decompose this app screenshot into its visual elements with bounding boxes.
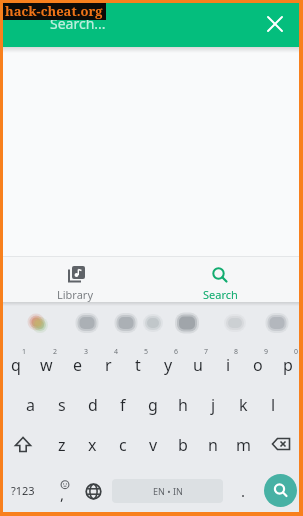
staticText: o <box>253 354 263 376</box>
staticText: b <box>178 434 188 456</box>
staticText: x <box>88 434 97 456</box>
button[interactable] <box>264 474 297 507</box>
staticText: h <box>178 394 188 416</box>
button[interactable]: k <box>228 385 258 425</box>
staticText: 3 <box>84 347 89 357</box>
staticText: 2 <box>53 347 58 357</box>
button[interactable]: l <box>258 385 288 425</box>
button[interactable]: h <box>168 385 198 425</box>
staticText: q <box>11 354 21 376</box>
staticText: f <box>120 394 126 416</box>
staticText: i <box>226 354 231 376</box>
staticText: 8 <box>234 347 239 357</box>
staticText: p <box>283 354 293 376</box>
button[interactable]: 4 <box>93 345 123 385</box>
staticText: Search <box>203 287 238 302</box>
staticText: 4 <box>114 347 119 357</box>
button[interactable] <box>258 465 303 516</box>
staticText: g <box>148 394 158 416</box>
button[interactable]: x <box>77 425 108 465</box>
button[interactable]: Search <box>144 257 296 302</box>
staticText: e <box>73 354 83 376</box>
button[interactable]: z <box>46 425 77 465</box>
staticText: 0 <box>294 347 299 357</box>
button[interactable]: f <box>108 385 138 425</box>
button[interactable]: a <box>15 385 46 425</box>
staticText: , <box>60 484 65 504</box>
button[interactable]: 6 <box>153 345 183 385</box>
staticText: 6 <box>174 347 179 357</box>
button[interactable]: EN • IN <box>107 465 228 516</box>
staticText: w <box>40 354 53 376</box>
staticText: . <box>241 481 246 501</box>
button[interactable]: 3 <box>62 345 93 385</box>
button[interactable]: b <box>168 425 198 465</box>
button[interactable] <box>77 465 107 516</box>
staticText: t <box>135 354 141 376</box>
staticText: c <box>119 434 127 456</box>
button[interactable]: 0 <box>273 345 303 385</box>
staticText: k <box>239 394 248 416</box>
staticText: r <box>105 354 112 376</box>
staticText: EN • IN <box>153 485 183 497</box>
button[interactable]: 8 <box>213 345 243 385</box>
button[interactable]: j <box>198 385 228 425</box>
staticText: 1 <box>22 347 27 357</box>
button[interactable]: 9 <box>243 345 273 385</box>
staticText: d <box>88 394 98 416</box>
button[interactable]: 2 <box>31 345 62 385</box>
button[interactable]: 7 <box>183 345 213 385</box>
staticText: y <box>164 354 173 376</box>
button[interactable]: v <box>138 425 168 465</box>
button[interactable]: . <box>228 465 258 516</box>
button[interactable]: d <box>77 385 108 425</box>
button[interactable] <box>259 8 291 40</box>
staticText: 7 <box>204 347 209 357</box>
staticText: 9 <box>264 347 269 357</box>
button[interactable] <box>258 425 303 465</box>
button[interactable]: 5 <box>123 345 153 385</box>
button[interactable]: g <box>138 385 168 425</box>
button[interactable]: , <box>46 465 77 516</box>
button[interactable]: m <box>228 425 258 465</box>
button[interactable]: s <box>46 385 77 425</box>
staticText: 5 <box>144 347 149 357</box>
staticText: s <box>58 394 66 416</box>
button[interactable]: c <box>108 425 138 465</box>
staticText: a <box>26 394 35 416</box>
staticText: l <box>271 394 276 416</box>
staticText: j <box>211 394 216 416</box>
staticText: ?123 <box>11 483 35 498</box>
staticText: hack-cheat.org <box>5 2 103 20</box>
staticText: Search... <box>50 14 106 33</box>
staticText: z <box>58 434 66 456</box>
staticText: m <box>236 434 251 456</box>
button[interactable]: 1 <box>0 345 31 385</box>
button[interactable]: n <box>198 425 228 465</box>
staticText: Library <box>57 287 94 302</box>
staticText: n <box>208 434 218 456</box>
button[interactable]: ?123 <box>0 465 46 516</box>
staticText: v <box>149 434 158 456</box>
staticText: u <box>193 354 203 376</box>
button[interactable]: Library <box>0 257 151 302</box>
button[interactable] <box>0 425 46 465</box>
